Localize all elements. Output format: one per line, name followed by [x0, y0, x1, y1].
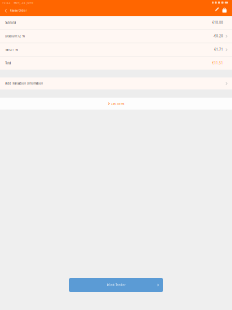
- button[interactable]: Add Transaction Information: [0, 77, 232, 90]
- staticText: Tax (21 %): [5, 48, 18, 51]
- button[interactable]: Cart: [220, 5, 232, 16]
- staticText: €1.71: [214, 48, 223, 51]
- staticText: Subtotal: [5, 21, 16, 24]
- staticText: Add Transaction Information: [5, 82, 43, 85]
- staticText: €10.00: [212, 21, 223, 24]
- button[interactable]: Select Tender: [69, 278, 163, 292]
- staticText: Cart Items: [111, 102, 124, 105]
- button[interactable]: Total: [0, 57, 232, 70]
- button[interactable]: Discount (2 %): [0, 30, 232, 43]
- staticText: Select Tender: [106, 283, 125, 287]
- staticText: -€0.20: [213, 34, 223, 38]
- staticText: €11.51: [212, 61, 223, 65]
- staticText: Review Order: [10, 9, 27, 12]
- button[interactable]: Review Order: [0, 5, 30, 16]
- button[interactable]: Cart Items: [0, 98, 232, 110]
- staticText: Discount (2 %): [5, 34, 25, 38]
- staticText: Total: [5, 61, 11, 65]
- staticText: 10:42 Mon, 24 June: [2, 1, 34, 4]
- button[interactable]: Tax (21 %): [0, 43, 232, 56]
- button[interactable]: Subtotal: [0, 16, 232, 29]
- button[interactable]: Edit: [213, 5, 220, 16]
